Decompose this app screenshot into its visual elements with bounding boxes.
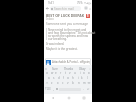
staticText: c [62,81,64,84]
staticText: Maybe it is the greatest. [46,47,78,51]
button[interactable]: o [82,71,86,74]
button[interactable]: Attachable & Portal - offgoing [45,58,91,66]
button[interactable]: i [78,71,82,74]
button[interactable]: h [71,76,75,79]
button[interactable]: e [54,71,58,74]
staticText: Search in mail [54,7,74,11]
button[interactable]: x [56,81,60,84]
button[interactable]: u [73,71,77,74]
staticText: w [51,71,54,74]
staticText: v [67,81,69,84]
staticText: Sure [52,67,58,71]
button[interactable]: Recent apps [82,96,85,99]
button[interactable]: s [52,76,56,79]
staticText: a [48,76,50,79]
button[interactable]: y [68,71,72,74]
button[interactable]: Back [45,6,50,11]
button[interactable]: a [47,76,51,79]
staticText: , [53,87,54,91]
staticText: d [58,76,60,79]
staticText: Attachable & Portal - offgoing [52,60,91,64]
staticText: g [67,76,69,79]
button[interactable]: t [64,71,68,74]
staticText: and fear. Boundaries: "It's not about th… [48,31,96,35]
staticText: Never mind to the regret and sorrow and [48,28,96,32]
staticText: o [83,71,85,74]
staticText: 75% [77,1,83,5]
staticText: f [63,76,64,79]
button[interactable]: p [87,71,91,74]
staticText: r [60,71,62,74]
staticText: 9:41 [48,1,54,5]
staticText: b [72,81,74,84]
button[interactable]: Comma [51,87,55,91]
staticText: s [53,76,55,79]
staticText: e [55,71,57,74]
button[interactable]: f [61,76,65,79]
staticText: q [46,71,48,74]
button[interactable]: Back [51,96,54,99]
staticText: h [72,76,74,79]
staticText: 1 [87,14,89,18]
button[interactable]: More options [88,7,91,10]
staticText: ?123 [45,87,51,91]
staticText: y [69,71,71,74]
button[interactable]: v [66,81,70,84]
staticText: BEST OF LUCK DEEPAK [46,13,85,18]
staticText: m [83,81,86,84]
staticText: . [83,87,84,91]
staticText: Thanks [64,67,74,71]
button[interactable]: k [80,76,84,79]
button[interactable]: r [59,71,63,74]
button[interactable]: c [61,81,65,84]
button[interactable]: l [85,76,89,79]
staticText: Someone sent you a message [46,22,88,26]
staticText: t [65,71,67,74]
button[interactable]: m [82,81,86,84]
staticText: k [81,76,83,79]
button[interactable]: Symbols [45,87,51,91]
staticText: It was indeed. [46,42,65,46]
staticText: so worth the sadness and how much time [48,34,96,38]
button[interactable]: Shift [45,81,49,84]
staticText: x [57,81,59,84]
staticText: Inbox [46,17,54,21]
button[interactable]: Home [67,96,70,99]
button[interactable]: z [50,81,54,84]
staticText: Okay [79,67,86,71]
button[interactable]: w [50,71,54,74]
staticText: p [88,71,90,74]
button[interactable]: Search in mail [50,6,81,11]
staticText: n [78,81,80,84]
button[interactable]: g [66,76,70,79]
button[interactable]: q [45,71,49,74]
button[interactable]: j [76,76,80,79]
staticText: u [74,71,76,74]
staticText: z [51,81,53,84]
button[interactable]: Enter [85,87,91,91]
staticText: i [80,71,81,74]
button[interactable]: n [77,81,81,84]
button[interactable]: Account [84,6,88,10]
button[interactable]: d [57,76,61,79]
button[interactable]: Period [81,87,85,91]
staticText: j [78,76,79,79]
button[interactable]: Emoji [55,87,59,91]
staticText: our breathing." [48,37,69,41]
button[interactable]: b [71,81,75,84]
button[interactable]: Backspace [87,81,91,84]
